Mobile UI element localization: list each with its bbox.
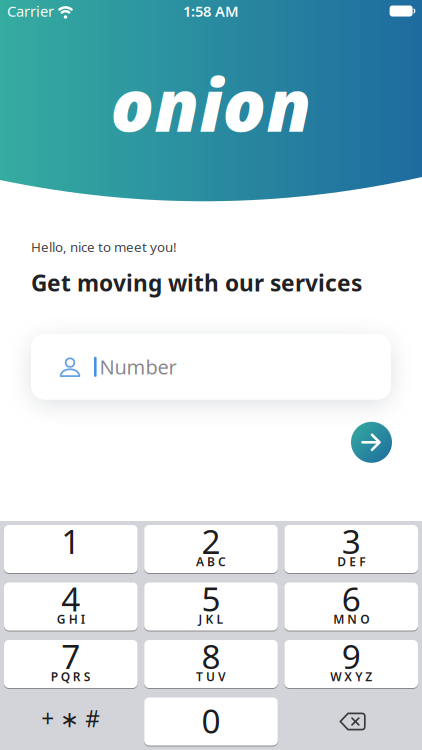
staticText: Hello, nice to meet you! [31, 238, 177, 256]
staticText: 9 [342, 634, 361, 678]
staticText: M N O [333, 611, 369, 627]
staticText: 4 [61, 576, 80, 621]
staticText: 6 [342, 576, 361, 621]
button[interactable]: More symbols [4, 697, 138, 745]
staticText: W X Y Z [330, 668, 372, 684]
staticText: A B C [196, 553, 226, 569]
staticText: P Q R S [51, 668, 91, 684]
staticText: 1:58 AM [183, 1, 239, 21]
staticText: 8 [201, 634, 220, 678]
button[interactable]: 4 [4, 582, 138, 630]
staticText: D E F [337, 553, 365, 569]
staticText: 7 [61, 634, 80, 678]
button[interactable]: 2 [144, 525, 278, 573]
staticText: J K L [198, 611, 223, 627]
staticText: 5 [201, 576, 220, 621]
staticText: onion [110, 56, 311, 152]
button[interactable]: 1 [4, 525, 138, 573]
staticText: 0 [201, 698, 220, 743]
button[interactable]: Number [31, 334, 391, 400]
staticText: 3 [342, 519, 361, 563]
button[interactable]: 5 [144, 582, 278, 630]
staticText: Get moving with our services [31, 268, 362, 298]
staticText: + ∗ # [41, 703, 100, 733]
button[interactable]: 8 [144, 640, 278, 688]
button[interactable]: 3 [284, 525, 418, 573]
button[interactable]: Delete [284, 697, 418, 745]
button[interactable]: 7 [4, 640, 138, 688]
button[interactable]: Continue [351, 422, 392, 463]
staticText: 2 [201, 519, 220, 563]
button[interactable]: 6 [284, 582, 418, 630]
button[interactable]: 0 [144, 697, 278, 745]
staticText: Number [100, 353, 177, 380]
staticText: T U V [196, 668, 226, 684]
button[interactable]: 9 [284, 640, 418, 688]
staticText: 1 [61, 519, 80, 563]
staticText: Carrier [7, 1, 54, 21]
staticText: G H I [57, 611, 85, 627]
